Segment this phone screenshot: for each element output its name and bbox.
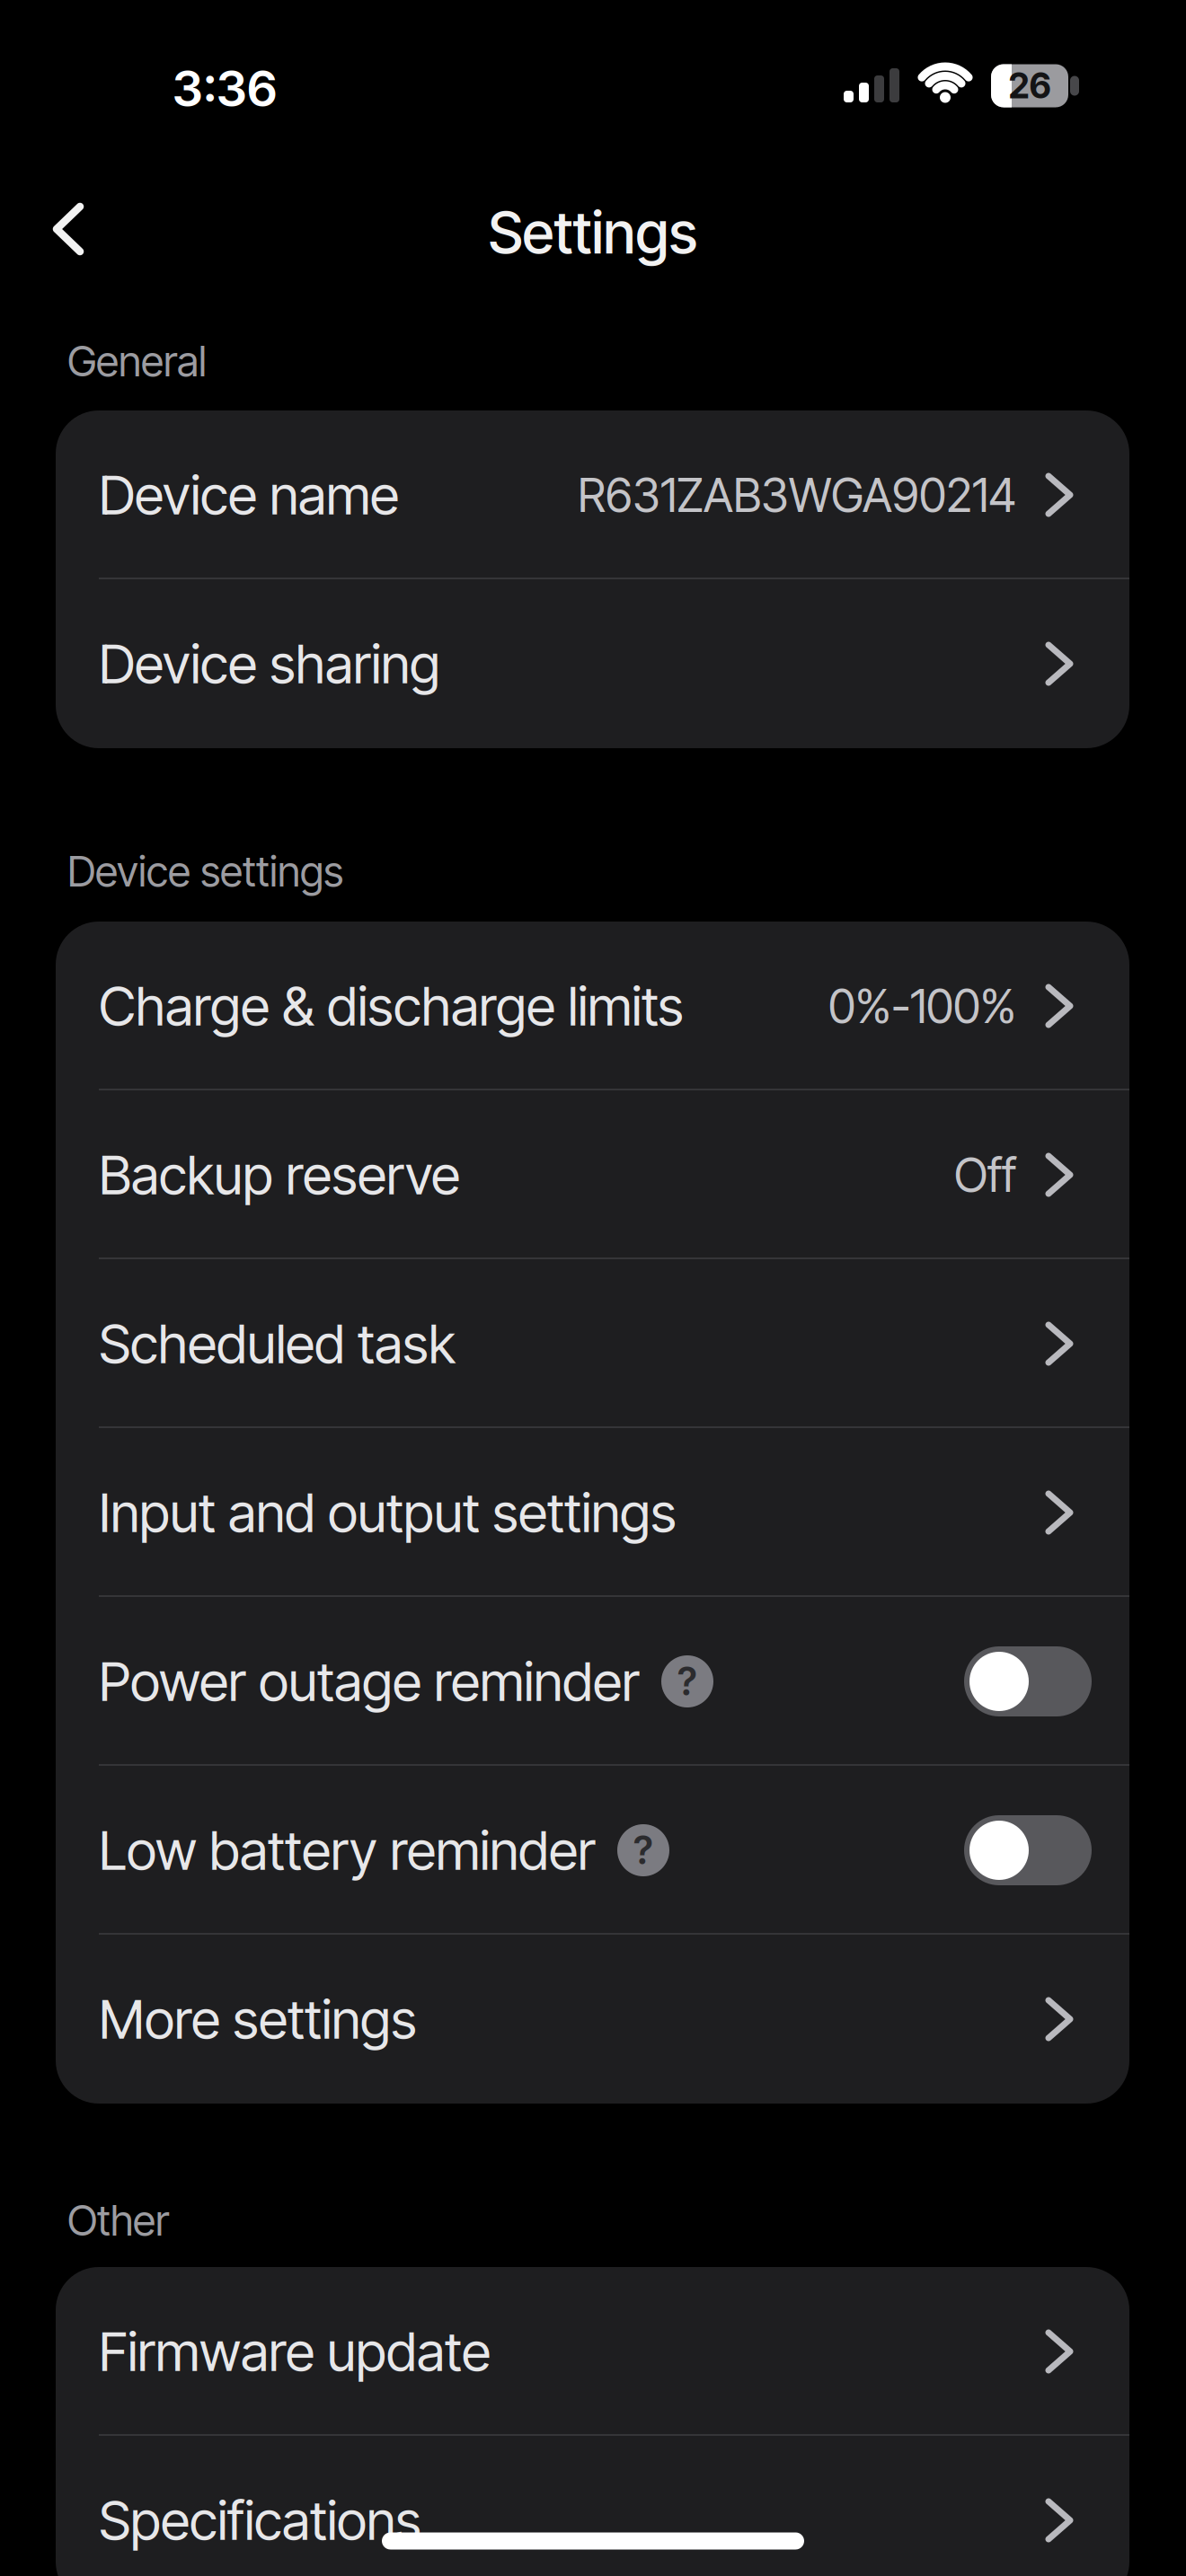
- button[interactable]: Low battery reminder: [56, 1766, 1129, 1935]
- staticText: More settings: [99, 1987, 417, 2051]
- button[interactable]: Device sharing: [56, 579, 1129, 748]
- button[interactable]: Input and output settings: [56, 1428, 1129, 1597]
- button[interactable]: Firmware update: [56, 2267, 1129, 2436]
- staticText: Power outage reminder: [99, 1650, 640, 1713]
- staticText: Firmware update: [99, 2320, 491, 2383]
- button[interactable]: Power outage reminder: [56, 1597, 1129, 1766]
- staticText: 26: [1009, 65, 1051, 106]
- staticText: R631ZAB3WGA90214: [578, 467, 1016, 522]
- staticText: Backup reserve: [99, 1143, 460, 1207]
- button[interactable]: More settings: [56, 1935, 1129, 2104]
- button[interactable]: Backup reserve: [56, 1090, 1129, 1259]
- staticText: Scheduled task: [99, 1312, 456, 1375]
- staticText: Specifications: [99, 2489, 421, 2552]
- staticText: Settings: [488, 199, 698, 266]
- staticText: Input and output settings: [99, 1481, 677, 1544]
- button[interactable]: Power outage reminder: [964, 1646, 1092, 1716]
- button[interactable]: Low battery reminder: [964, 1815, 1092, 1885]
- staticText: General: [67, 336, 207, 386]
- staticText: 3:36: [173, 59, 277, 117]
- staticText: Other: [67, 2196, 169, 2245]
- button[interactable]: Specifications: [56, 2436, 1129, 2576]
- staticText: Device name: [99, 463, 399, 527]
- staticText: Low battery reminder: [99, 1818, 596, 1882]
- button[interactable]: Back: [30, 180, 107, 278]
- button[interactable]: About Low battery reminder: [617, 1824, 669, 1876]
- button[interactable]: Device name: [56, 410, 1129, 579]
- staticText: Device sharing: [99, 632, 440, 696]
- staticText: Device settings: [67, 847, 343, 896]
- button[interactable]: Scheduled task: [56, 1259, 1129, 1428]
- button[interactable]: Charge & discharge limits: [56, 922, 1129, 1090]
- staticText: ?: [633, 1828, 653, 1873]
- staticText: ?: [677, 1659, 697, 1704]
- button[interactable]: About Power outage reminder: [661, 1655, 713, 1707]
- staticText: Charge & discharge limits: [99, 974, 684, 1038]
- staticText: Off: [954, 1147, 1016, 1202]
- staticText: 0%-100%: [828, 978, 1016, 1033]
